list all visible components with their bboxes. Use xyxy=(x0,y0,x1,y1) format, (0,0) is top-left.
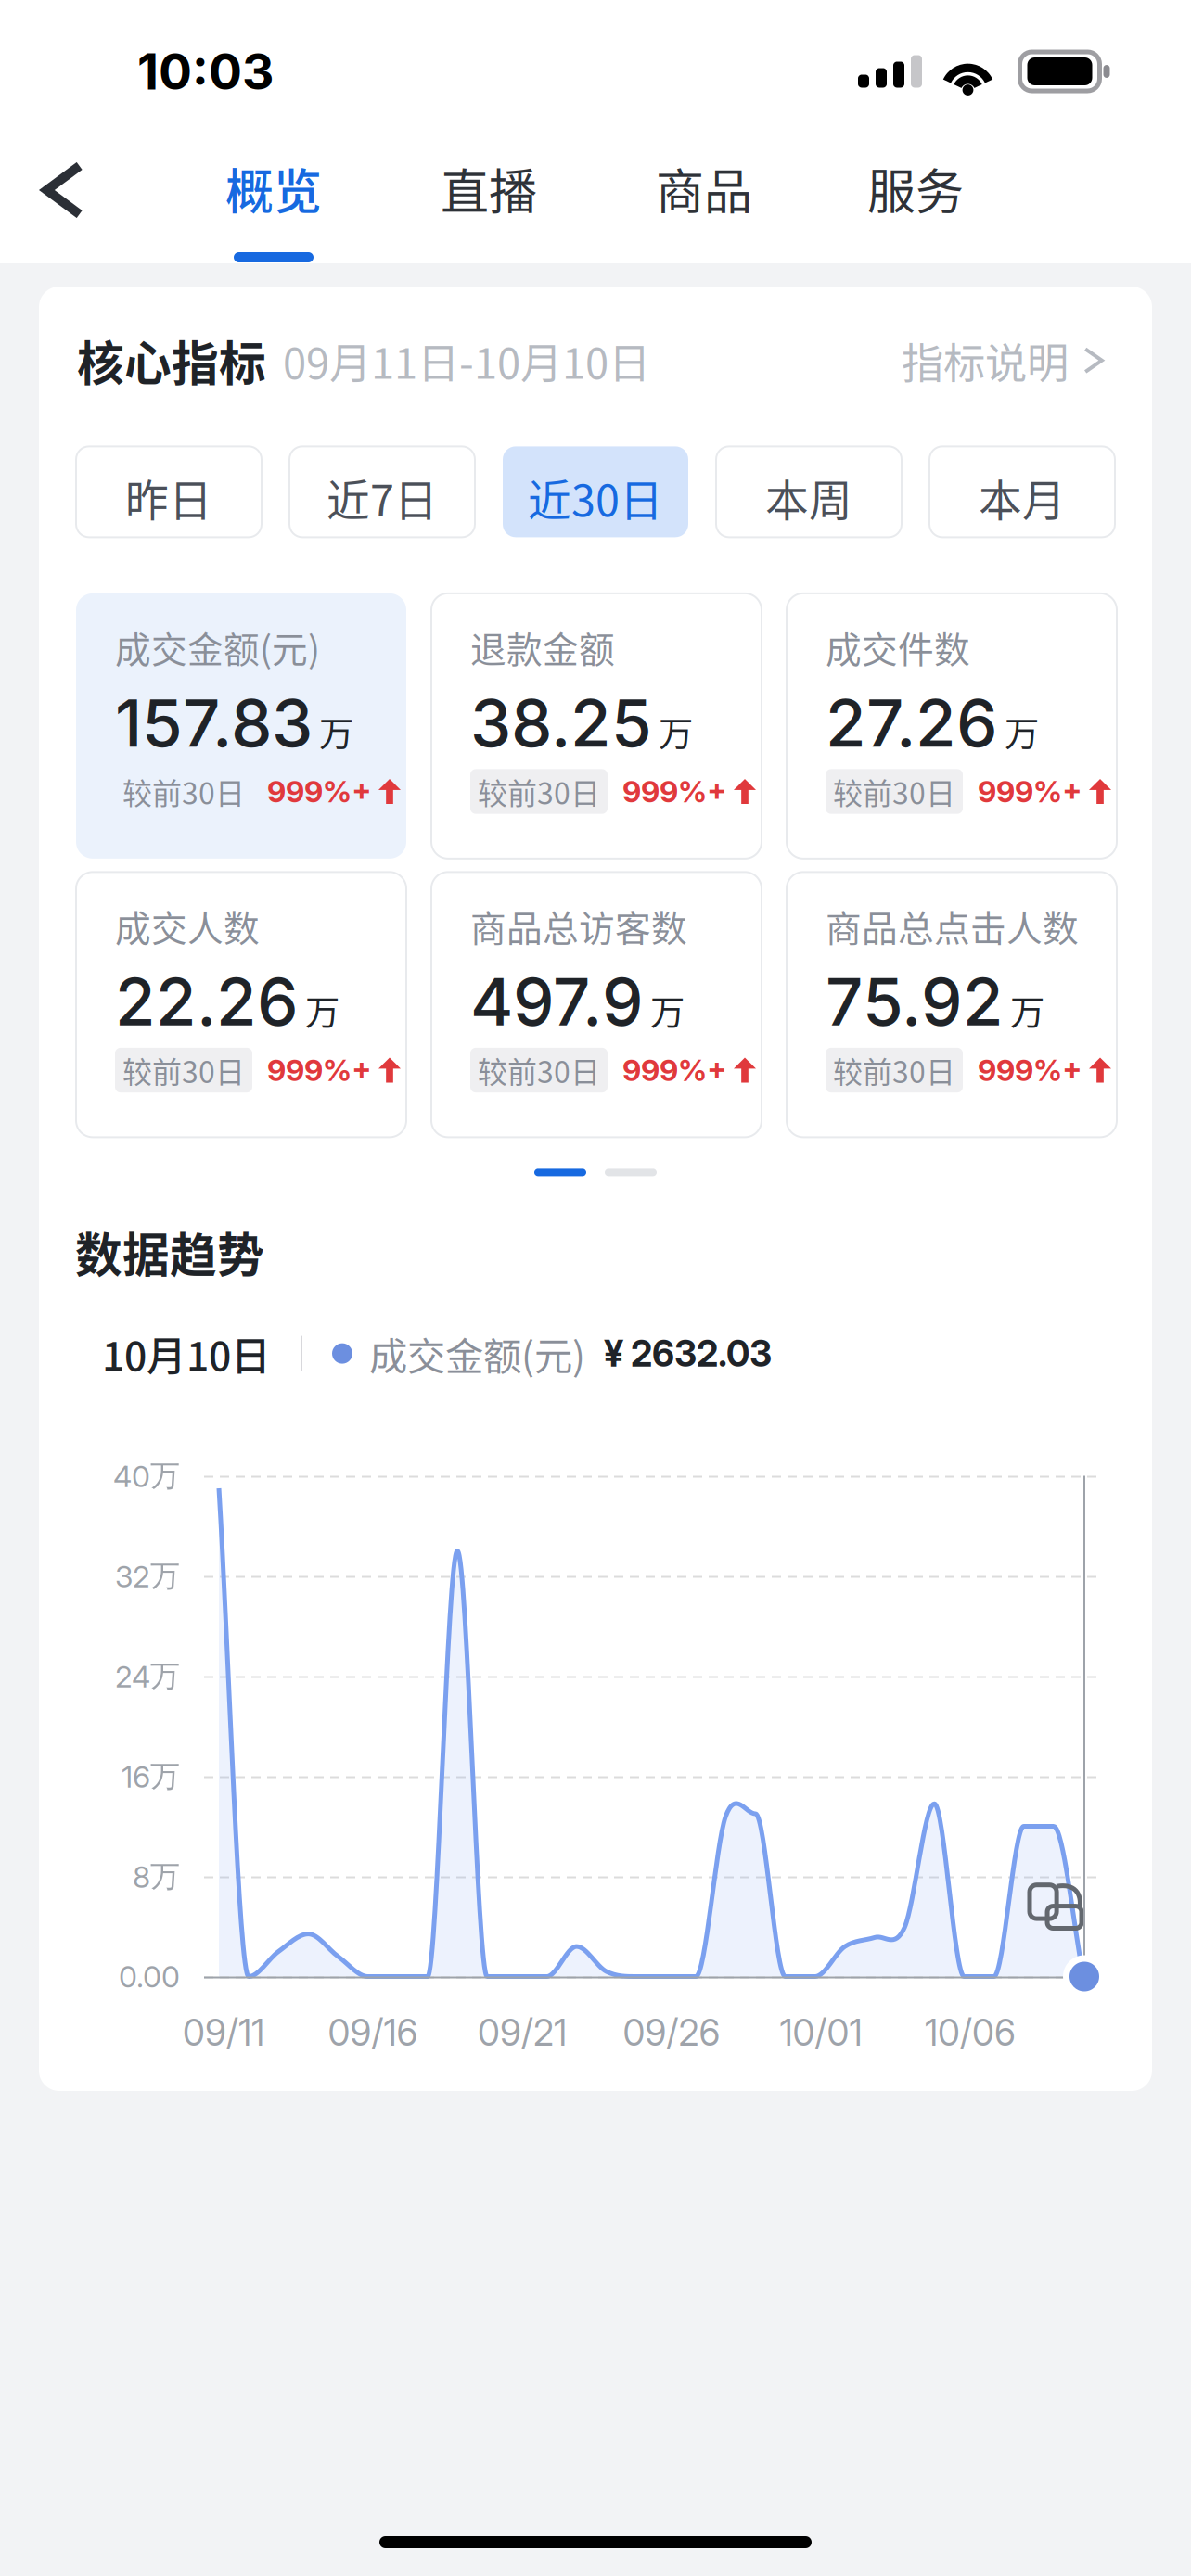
button[interactable]: 指标说明 xyxy=(902,330,1106,391)
staticText: 万 xyxy=(319,707,353,757)
staticText: 999%+ xyxy=(622,774,726,809)
staticText: 成交人数 xyxy=(115,900,260,952)
staticText: 近30日 xyxy=(528,466,663,529)
staticText: 较前30日 xyxy=(833,770,955,813)
staticText: 较前30日 xyxy=(122,770,245,813)
staticText: 较前30日 xyxy=(833,1049,955,1092)
staticText: 商品总访客数 xyxy=(470,900,687,952)
staticText: 成交件数 xyxy=(826,621,970,673)
staticText: 万 xyxy=(659,707,693,757)
staticText: 概览 xyxy=(225,153,322,223)
staticText: 较前30日 xyxy=(122,1049,245,1092)
staticText: 万 xyxy=(305,985,339,1035)
button[interactable]: 昨日 xyxy=(76,446,262,537)
staticText: 退款金额 xyxy=(470,621,615,673)
staticText: 999%+ xyxy=(267,774,371,809)
staticText: 24万 xyxy=(115,1657,180,1695)
staticText: 497.9 xyxy=(470,962,644,1041)
button[interactable]: 直播 xyxy=(433,153,544,262)
staticText: 10月10日 xyxy=(102,1325,271,1382)
staticText: 09/16 xyxy=(328,2011,418,2054)
staticText: 999%+ xyxy=(267,1052,371,1088)
staticText: 近7日 xyxy=(327,466,438,529)
button[interactable]: 本周 xyxy=(716,446,902,537)
button[interactable]: Back xyxy=(19,153,107,251)
button[interactable]: 服务 xyxy=(860,153,971,262)
staticText: 0.00 xyxy=(119,1959,180,1994)
button[interactable]: 近30日 xyxy=(503,446,688,537)
staticText: 服务 xyxy=(867,153,964,223)
staticText: 999%+ xyxy=(978,1052,1082,1088)
staticText: 昨日 xyxy=(125,466,212,529)
staticText: 38.25 xyxy=(470,683,652,763)
staticText: 较前30日 xyxy=(478,770,600,813)
staticText: 16万 xyxy=(122,1758,180,1795)
staticText: 万 xyxy=(650,985,685,1035)
staticText: 09/21 xyxy=(478,2011,567,2054)
staticText: 999%+ xyxy=(622,1052,726,1088)
staticText: 直播 xyxy=(441,153,537,223)
button[interactable]: 本月 xyxy=(929,446,1115,537)
staticText: 较前30日 xyxy=(478,1049,600,1092)
staticText: 万 xyxy=(1010,985,1044,1035)
staticText: 32万 xyxy=(115,1557,180,1595)
staticText: 核心指标 xyxy=(77,326,266,394)
staticText: 75.92 xyxy=(826,962,1004,1041)
staticText: 40万 xyxy=(113,1457,180,1495)
staticText: 8万 xyxy=(133,1858,180,1895)
staticText: 09月11日-10月10日 xyxy=(283,330,650,391)
staticText: 09/11 xyxy=(183,2011,264,2054)
staticText: 27.26 xyxy=(826,683,998,763)
staticText: 万 xyxy=(1005,707,1039,757)
staticText: 本月 xyxy=(979,466,1066,529)
staticText: 本周 xyxy=(765,466,852,529)
staticText: 22.26 xyxy=(115,962,299,1041)
staticText: 10/06 xyxy=(925,2011,1016,2054)
staticText: 10/01 xyxy=(780,2011,862,2054)
button[interactable]: 近7日 xyxy=(289,446,475,537)
button[interactable]: 商品 xyxy=(648,153,760,262)
staticText: 商品总点击人数 xyxy=(826,900,1079,952)
staticText: 10:03 xyxy=(137,41,274,101)
staticText: 09/26 xyxy=(623,2011,720,2054)
staticText: 157.83 xyxy=(115,683,313,763)
staticText: 999%+ xyxy=(978,774,1082,809)
staticText: 数据趋势 xyxy=(75,1218,264,1286)
staticText: 成交金额(元) xyxy=(369,1326,585,1381)
staticText: ¥ 2632.03 xyxy=(604,1332,772,1375)
staticText: 成交金额(元) xyxy=(115,621,320,673)
button[interactable]: 概览 xyxy=(218,153,329,262)
staticText: 商品 xyxy=(656,153,752,223)
staticText: 指标说明 xyxy=(902,330,1069,391)
